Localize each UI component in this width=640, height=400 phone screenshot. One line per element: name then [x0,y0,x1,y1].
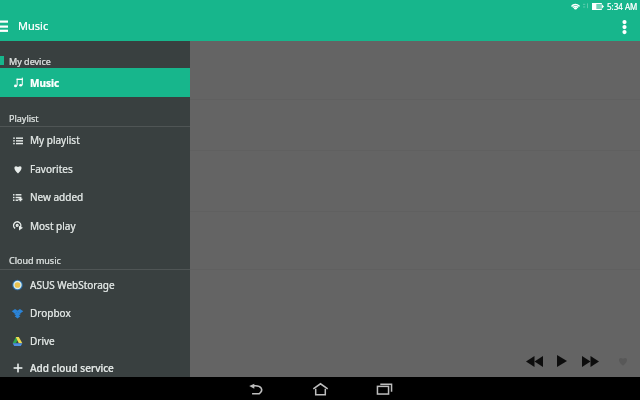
button[interactable]: ASUS WebStorage [0,272,190,298]
button[interactable]: Dropbox [0,300,190,326]
staticText: 5:34 AM [607,1,638,12]
staticText: Playlist [9,112,39,124]
button[interactable]: Music [0,68,190,97]
button[interactable]: Home [303,378,337,400]
staticText: Most play [30,219,76,233]
staticText: New added [30,190,84,204]
button[interactable]: Most play [0,213,190,239]
button[interactable]: Recent apps [367,378,401,400]
button[interactable]: Previous [519,347,549,375]
button[interactable]: Add cloud service [0,355,190,381]
staticText: My device [9,55,51,67]
button[interactable]: Next [575,347,605,375]
button[interactable]: More options [614,15,634,37]
staticText: ASUS WebStorage [30,278,115,292]
button[interactable]: My playlist [0,127,190,153]
staticText: Music [18,18,49,33]
button[interactable]: Back [239,378,273,400]
button[interactable]: Favorites [0,156,190,182]
staticText: Music [30,76,60,90]
staticText: Dropbox [30,306,71,320]
staticText: Add cloud service [30,361,114,375]
staticText: Favorites [30,162,73,176]
button[interactable]: New added [0,184,190,210]
staticText: My playlist [30,133,80,147]
staticText: Cloud music [9,254,61,266]
staticText: Drive [30,334,55,348]
button[interactable]: Play [547,347,577,375]
button[interactable]: Open navigation drawer [0,14,14,38]
button[interactable]: Drive [0,328,190,354]
